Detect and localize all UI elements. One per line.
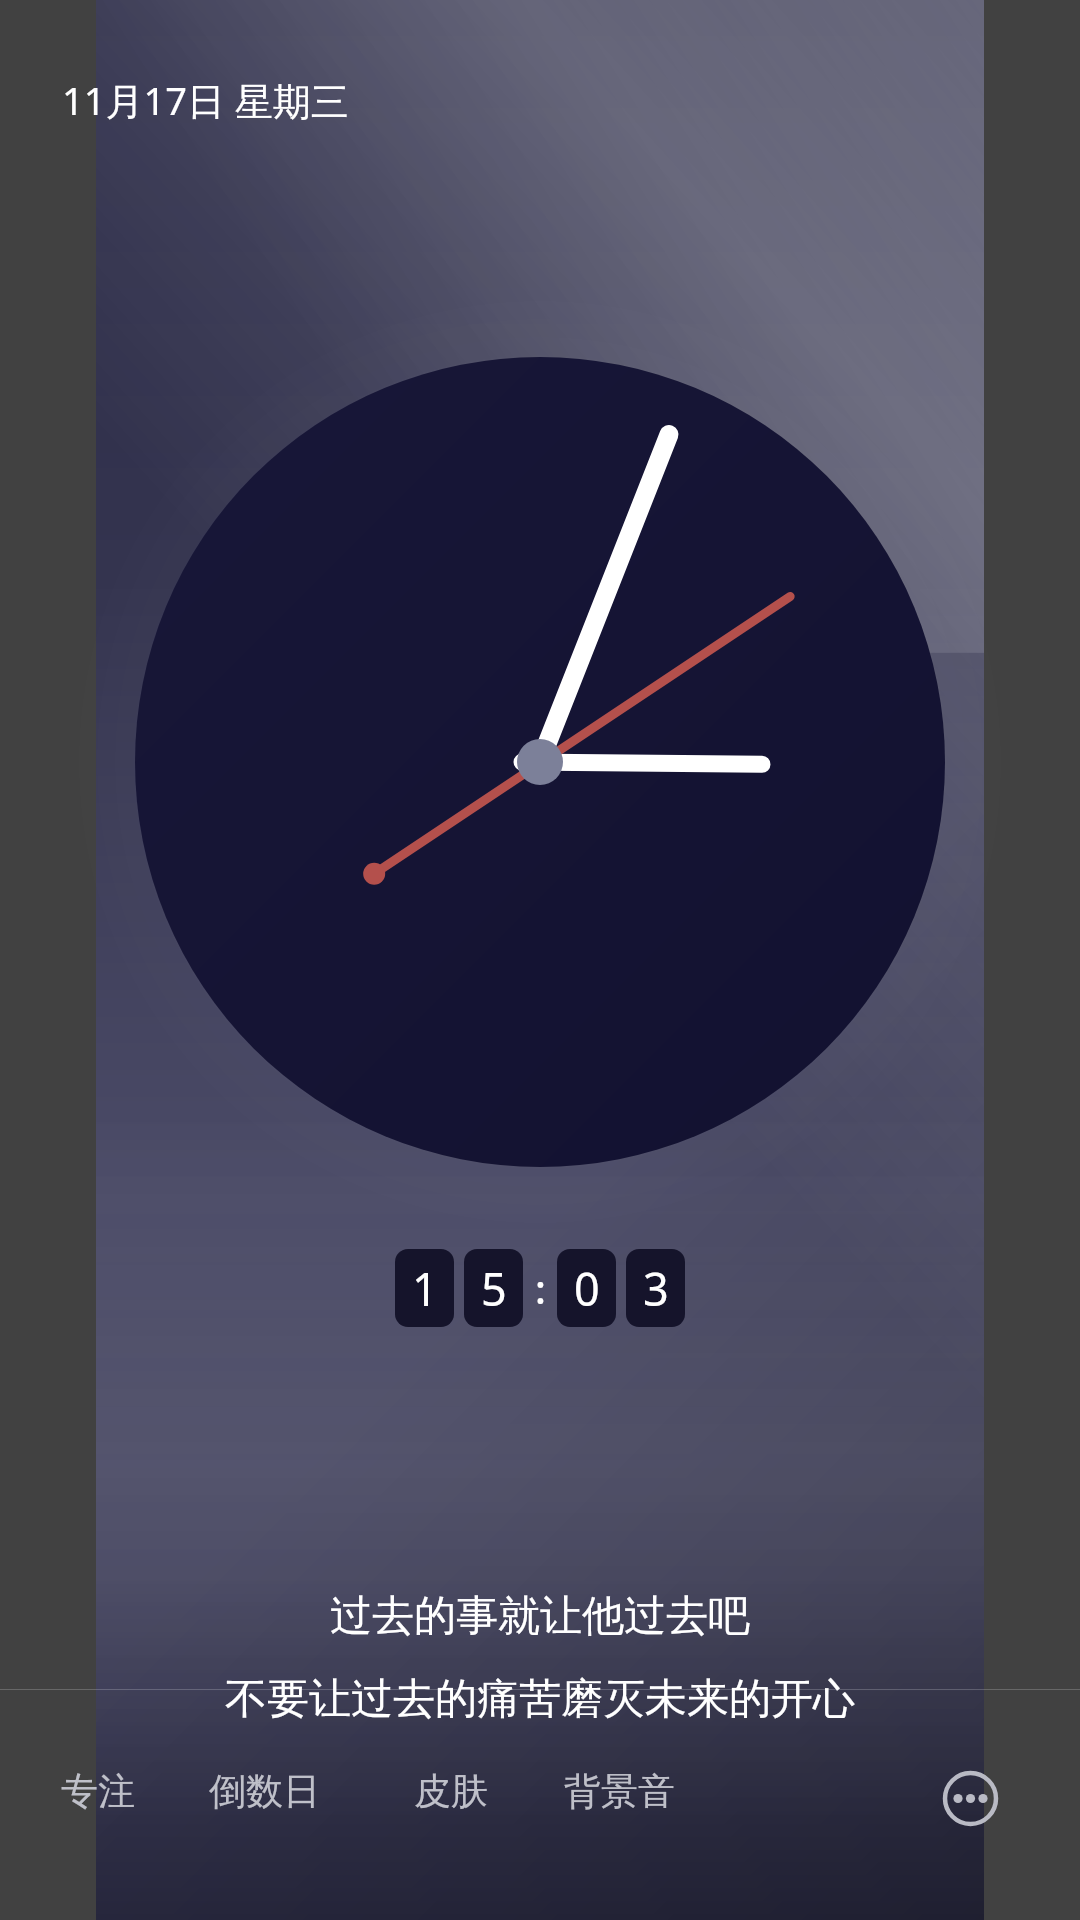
- staticText: 专注: [61, 1768, 135, 1815]
- staticText: 不要让过去的痛苦磨灭未来的开心: [225, 1673, 855, 1726]
- staticText: 0: [574, 1258, 600, 1319]
- staticText: 3: [643, 1258, 669, 1319]
- button[interactable]: More options: [942, 1770, 999, 1827]
- staticText: 11月17日 星期三: [62, 74, 349, 126]
- button[interactable]: 背景音: [564, 1768, 675, 1815]
- staticText: 皮肤: [414, 1768, 488, 1815]
- button[interactable]: 皮肤: [414, 1768, 488, 1815]
- button[interactable]: 5: [464, 1249, 523, 1327]
- staticText: 1: [412, 1258, 438, 1319]
- staticText: 过去的事就让他过去吧: [330, 1590, 750, 1643]
- button[interactable]: 倒数日: [209, 1768, 320, 1815]
- staticText: :: [535, 1261, 546, 1315]
- button[interactable]: 1: [395, 1249, 454, 1327]
- button[interactable]: 专注: [61, 1768, 135, 1815]
- staticText: 倒数日: [209, 1768, 320, 1815]
- button[interactable]: 0: [557, 1249, 616, 1327]
- staticText: 背景音: [564, 1768, 675, 1815]
- button[interactable]: 3: [626, 1249, 685, 1327]
- staticText: 5: [481, 1258, 507, 1319]
